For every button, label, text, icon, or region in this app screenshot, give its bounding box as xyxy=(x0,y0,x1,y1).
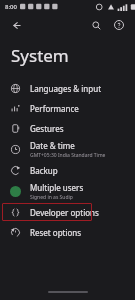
staticText: Gestures xyxy=(30,123,64,134)
staticText: Backup xyxy=(30,165,58,176)
staticText: 8:00 xyxy=(5,3,17,11)
button[interactable]: Help xyxy=(109,15,129,35)
button[interactable]: Languages & input xyxy=(0,78,135,98)
staticText: Reset options xyxy=(30,227,82,238)
button[interactable]: Reset options xyxy=(0,222,135,242)
staticText: GMT+05:30 India Standard Time xyxy=(30,152,106,159)
staticText: Developer options xyxy=(30,207,99,218)
staticText: Languages & input xyxy=(30,83,102,94)
button[interactable]: Date & time xyxy=(0,138,135,160)
button[interactable]: Gestures xyxy=(0,118,135,138)
staticText: Multiple users xyxy=(30,182,84,193)
staticText: System xyxy=(11,44,69,67)
button[interactable]: Backup xyxy=(0,160,135,180)
button[interactable]: Multiple users xyxy=(0,180,135,202)
button[interactable]: Back xyxy=(6,15,26,35)
staticText: Signed in as Sudip xyxy=(30,194,73,201)
button[interactable]: Developer options xyxy=(0,202,135,222)
staticText: Performance xyxy=(30,103,79,114)
staticText: Date & time xyxy=(30,140,75,151)
button[interactable]: Performance xyxy=(0,98,135,118)
button[interactable]: Search xyxy=(86,15,106,35)
